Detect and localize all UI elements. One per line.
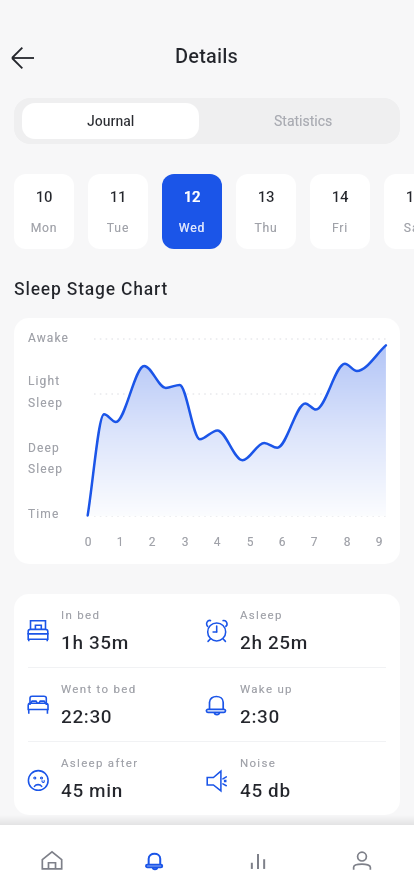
button[interactable]: Asleep after [14,742,193,815]
staticText: Sleep Stage Chart [14,279,169,300]
staticText: Asleep after [61,756,139,769]
staticText: 2:30 [240,705,280,727]
staticText: 3 [175,535,195,549]
staticText: Thu [236,221,296,235]
staticText: 10 [14,188,74,206]
staticText: 6 [272,535,292,549]
button[interactable]: In bed [14,594,193,668]
button[interactable]: Notifications [103,825,206,896]
button[interactable]: Statistics [207,98,400,144]
staticText: Tue [88,221,148,235]
button[interactable]: Back [1,36,45,80]
staticText: Fri [310,221,370,235]
staticText: Sleep [28,396,64,410]
staticText: 2 [142,535,162,549]
staticText: Wed [162,221,222,235]
staticText: Sleep [28,462,64,476]
staticText: 9 [369,535,389,549]
staticText: 45 min [61,779,123,801]
staticText: Sat [384,221,414,235]
staticText: Statistics [274,113,333,129]
staticText: 7 [304,535,324,549]
button[interactable]: 12 [162,174,222,249]
staticText: 0 [78,535,98,549]
button[interactable]: 14 [310,174,370,249]
button[interactable]: Asleep [193,594,372,668]
button[interactable]: Went to bed [14,668,193,742]
button[interactable]: 15 [384,174,414,249]
staticText: Asleep [240,608,283,621]
button[interactable]: Home [0,825,103,896]
staticText: Mon [14,221,74,235]
staticText: 1h 35m [61,631,129,653]
staticText: 4 [207,535,227,549]
staticText: Wake up [240,682,293,695]
staticText: Awake [28,331,70,345]
staticText: 13 [236,188,296,206]
staticText: Details [175,44,239,67]
staticText: In bed [61,608,101,621]
staticText: 15 [384,188,414,206]
button[interactable]: Journal [22,103,199,139]
staticText: 12 [162,188,222,206]
button[interactable]: Profile [310,825,414,896]
button[interactable]: Wake up [193,668,372,742]
button[interactable]: 10 [14,174,74,249]
staticText: 2h 25m [240,631,308,653]
staticText: Deep [28,441,60,455]
staticText: 8 [337,535,357,549]
staticText: Noise [240,756,277,769]
button[interactable]: 11 [88,174,148,249]
button[interactable]: Noise [193,742,372,815]
staticText: 1 [110,535,130,549]
button[interactable]: Statistics [206,825,310,896]
staticText: Time [28,507,60,521]
staticText: 11 [88,188,148,206]
staticText: 22:30 [61,705,113,727]
staticText: Light [28,374,61,388]
staticText: 5 [240,535,260,549]
staticText: 14 [310,188,370,206]
staticText: Went to bed [61,682,137,695]
button[interactable]: 13 [236,174,296,249]
staticText: Journal [87,113,135,129]
staticText: 45 db [240,779,291,801]
